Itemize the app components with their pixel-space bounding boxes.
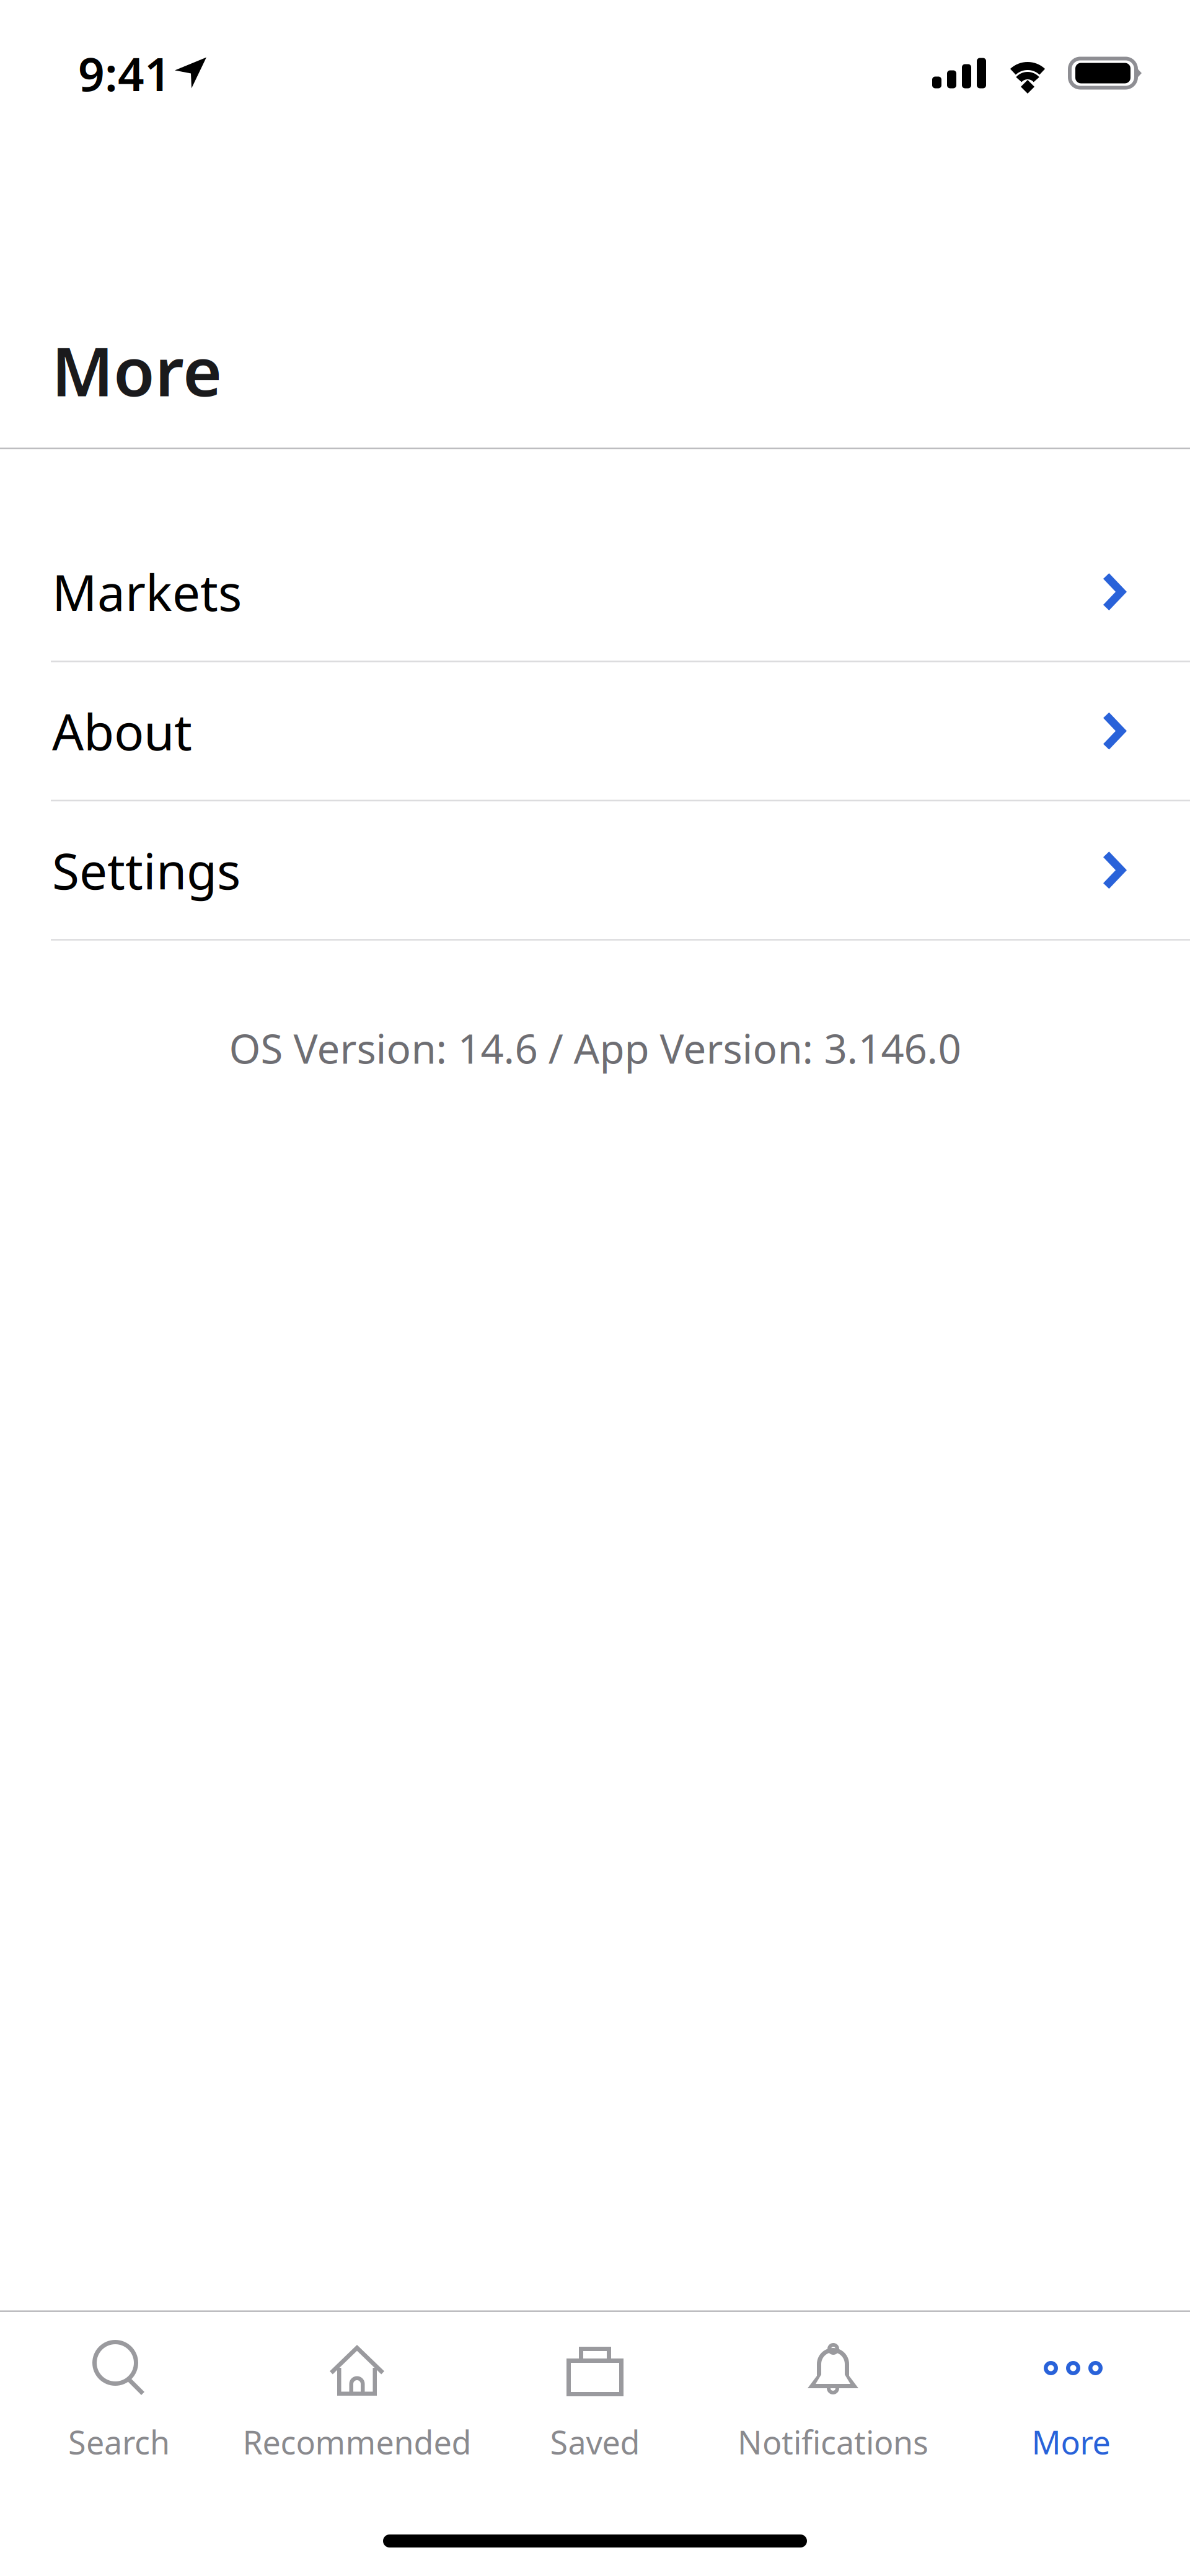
staticText: OS Version: 14.6 / App Version: 3.146.0 (229, 1021, 961, 1075)
staticText: Search (68, 2420, 170, 2463)
staticText: 9:41 (78, 42, 171, 104)
button[interactable]: Search (0, 2338, 238, 2463)
staticText: More (1032, 2420, 1110, 2463)
staticText: About (52, 698, 192, 764)
staticText: Notifications (738, 2420, 928, 2463)
staticText: More (51, 326, 222, 415)
button[interactable]: Settings (0, 801, 1190, 941)
button[interactable]: Recommended (238, 2338, 476, 2463)
staticText: Recommended (243, 2420, 471, 2463)
staticText: Saved (550, 2420, 640, 2463)
button[interactable]: About (0, 662, 1190, 801)
staticText: Settings (52, 837, 240, 903)
button[interactable]: Markets (0, 523, 1190, 662)
button[interactable]: Saved (476, 2338, 714, 2463)
button[interactable]: More (952, 2338, 1190, 2463)
staticText: Markets (52, 559, 242, 625)
button[interactable]: Notifications (714, 2338, 952, 2463)
